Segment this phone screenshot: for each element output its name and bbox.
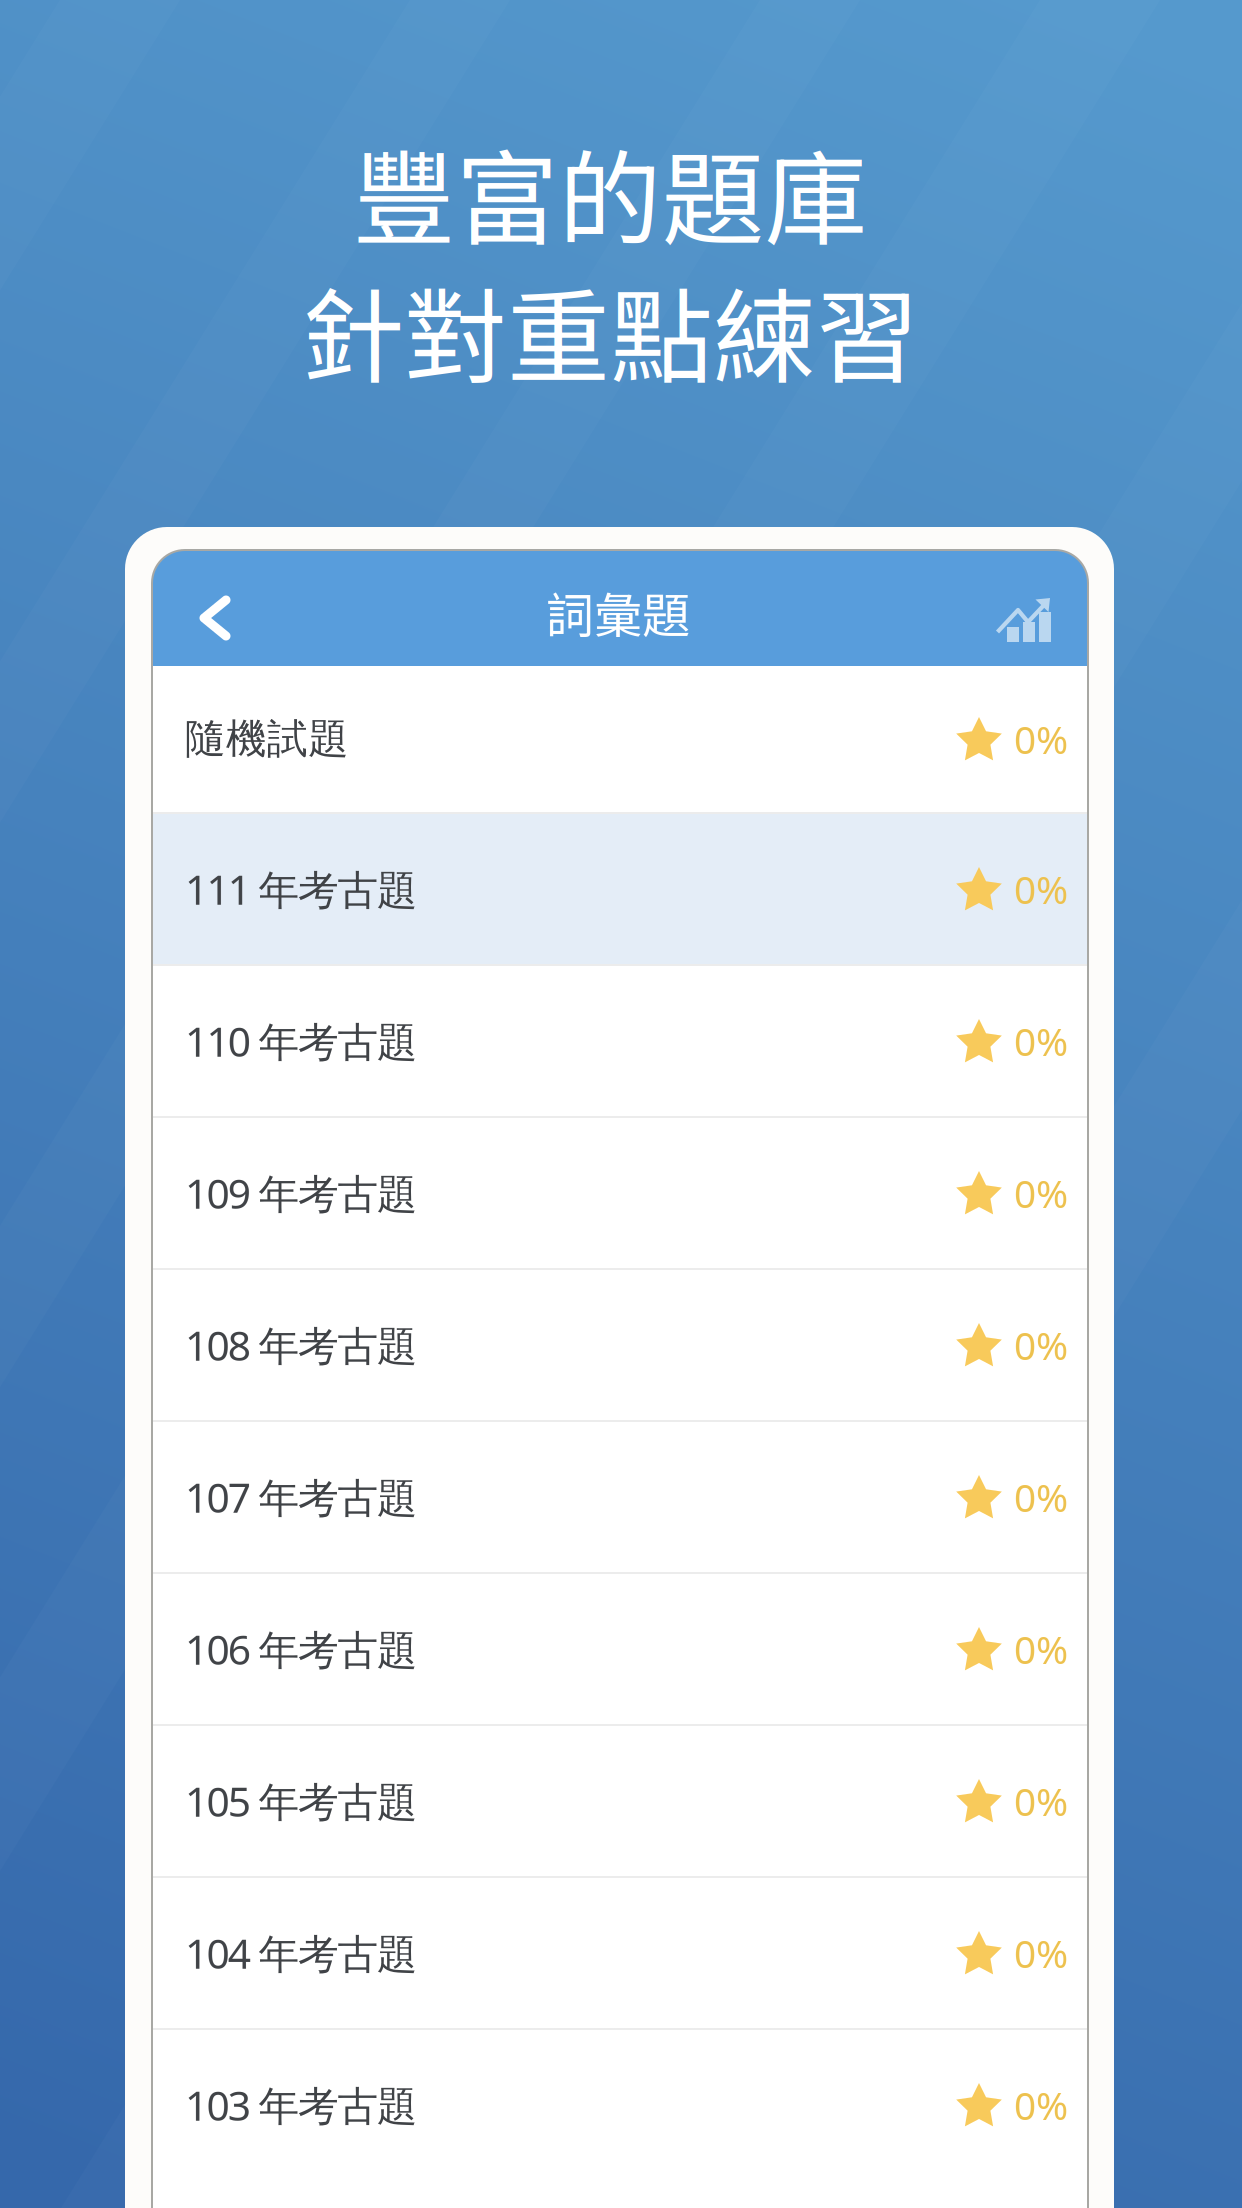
button[interactable]: 110 年考古題 bbox=[152, 966, 1088, 1116]
staticText: 0% bbox=[1014, 1775, 1068, 1827]
button[interactable]: 103 年考古題 bbox=[152, 2030, 1088, 2180]
staticText: 0% bbox=[1014, 863, 1068, 915]
button[interactable]: Back bbox=[152, 550, 258, 666]
staticText: 0% bbox=[1014, 1167, 1068, 1219]
staticText: 針對重點練習 bbox=[301, 256, 919, 404]
staticText: 109 年考古題 bbox=[185, 1165, 418, 1221]
button[interactable]: 107 年考古題 bbox=[152, 1422, 1088, 1572]
staticText: 106 年考古題 bbox=[185, 1621, 418, 1677]
staticText: 0% bbox=[1014, 2079, 1068, 2131]
button[interactable]: 104 年考古題 bbox=[152, 1878, 1088, 2028]
staticText: 103 年考古題 bbox=[185, 2077, 418, 2133]
staticText: 詞彙題 bbox=[546, 577, 690, 647]
button[interactable]: 106 年考古題 bbox=[152, 1574, 1088, 1724]
button[interactable]: 109 年考古題 bbox=[152, 1118, 1088, 1268]
button[interactable]: 隨機試題 bbox=[152, 666, 1088, 812]
staticText: 0% bbox=[1014, 1471, 1068, 1523]
button[interactable]: 108 年考古題 bbox=[152, 1270, 1088, 1420]
staticText: 105 年考古題 bbox=[185, 1773, 418, 1829]
staticText: 104 年考古題 bbox=[185, 1925, 418, 1981]
staticText: 0% bbox=[1014, 713, 1068, 765]
staticText: 111 年考古題 bbox=[185, 861, 418, 917]
staticText: 0% bbox=[1014, 1927, 1068, 1979]
staticText: 108 年考古題 bbox=[185, 1317, 418, 1373]
button[interactable]: Statistics bbox=[967, 550, 1088, 666]
button[interactable]: 105 年考古題 bbox=[152, 1726, 1088, 1876]
staticText: 隨機試題 bbox=[185, 713, 349, 765]
staticText: 0% bbox=[1014, 1319, 1068, 1371]
staticText: 110 年考古題 bbox=[185, 1013, 418, 1069]
button[interactable]: 111 年考古題 bbox=[152, 814, 1088, 964]
staticText: 0% bbox=[1014, 1015, 1068, 1067]
staticText: 107 年考古題 bbox=[185, 1469, 418, 1525]
staticText: 0% bbox=[1014, 1623, 1068, 1675]
staticText: 豐富的題庫 bbox=[352, 118, 867, 266]
